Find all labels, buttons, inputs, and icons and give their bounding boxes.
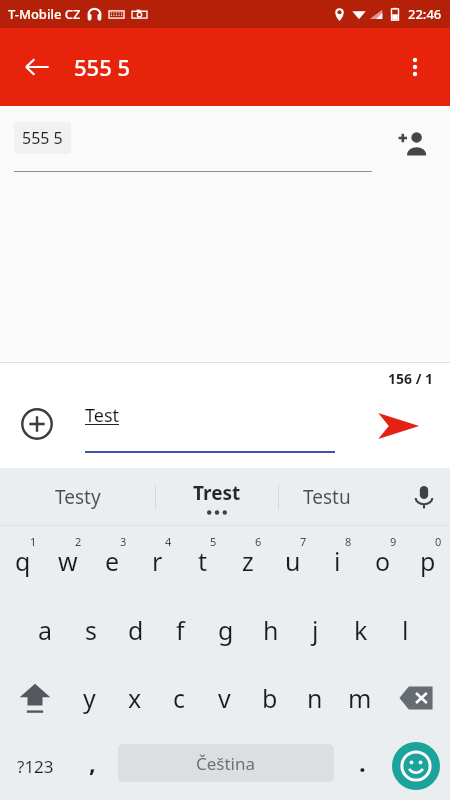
staticText: 3 [120,534,127,549]
button[interactable]: Comma [70,732,114,800]
staticText: o [375,544,391,578]
button[interactable]: t [180,526,225,596]
staticText: 1 [30,534,37,549]
button[interactable]: Add contact [390,121,436,167]
staticText: a [38,613,53,647]
staticText: 5 [210,534,217,549]
button[interactable]: g [203,596,248,664]
staticText: g [218,613,234,647]
button[interactable]: Čeština [118,744,334,782]
button[interactable]: 555 5 [14,122,71,154]
staticText: 156 / 1 [388,369,434,388]
staticText: v [218,681,231,715]
button[interactable]: b [247,664,292,732]
button[interactable]: Testu [279,468,398,526]
button[interactable]: y [67,664,112,732]
button[interactable]: d [113,596,158,664]
button[interactable]: f [158,596,203,664]
button[interactable]: r [135,526,180,596]
button[interactable]: a [23,596,68,664]
button[interactable]: h [248,596,293,664]
staticText: , [89,746,96,779]
staticText: 8 [345,534,352,549]
button[interactable]: m [337,664,382,732]
button[interactable]: Backspace [385,664,447,732]
button[interactable]: ?123 [4,732,66,800]
staticText: z [242,544,254,578]
staticText: 22:46 [408,5,442,23]
staticText: 9 [390,534,397,549]
staticText: h [263,613,279,647]
button[interactable]: More options [392,44,438,90]
staticText: q [15,544,31,578]
staticText: 555 5 [22,127,63,149]
staticText: d [128,613,144,647]
staticText: ?123 [17,755,54,778]
staticText: f [176,613,185,647]
staticText: . [359,746,366,779]
staticText: j [312,613,319,647]
button[interactable]: c [157,664,202,732]
button[interactable]: Voice input [398,468,450,526]
button[interactable]: Trest [156,468,278,526]
button[interactable]: k [338,596,383,664]
staticText: Testy [55,484,101,510]
staticText: b [262,681,278,715]
staticText: p [420,544,436,578]
staticText: w [58,544,78,578]
staticText: 6 [255,534,262,549]
button[interactable]: p [405,526,450,596]
staticText: l [402,613,409,647]
staticText: u [285,544,301,578]
button[interactable]: o [360,526,405,596]
staticText: t [198,544,208,578]
button[interactable]: w [45,526,90,596]
button[interactable]: e [90,526,135,596]
staticText: m [348,681,372,715]
staticText: c [173,681,186,715]
button[interactable]: s [68,596,113,664]
staticText: e [105,544,120,578]
staticText: n [307,681,323,715]
button[interactable]: Shift [3,664,67,732]
staticText: T-Mobile CZ [8,5,81,23]
staticText: k [354,613,368,647]
button[interactable]: Testy [0,468,155,526]
staticText: 0 [435,534,442,549]
staticText: Čeština [196,752,256,775]
staticText: 555 5 [74,52,131,82]
button[interactable]: q [0,526,45,596]
button[interactable]: j [293,596,338,664]
staticText: r [152,544,163,578]
staticText: 7 [300,534,307,549]
button[interactable]: z [225,526,270,596]
button[interactable]: x [112,664,157,732]
button[interactable]: u [270,526,315,596]
button[interactable]: Emoji [392,742,440,790]
staticText: Test [85,403,120,428]
staticText: 2 [75,534,82,549]
button[interactable]: Send [368,396,428,456]
staticText: i [334,544,341,578]
staticText: y [83,681,96,715]
button[interactable]: i [315,526,360,596]
staticText: Trest [193,480,241,506]
button[interactable]: v [202,664,247,732]
button[interactable]: l [383,596,428,664]
button[interactable]: Back [14,44,60,90]
staticText: x [128,681,142,715]
staticText: Testu [303,484,351,510]
button[interactable]: Period [340,732,384,800]
button[interactable]: n [292,664,337,732]
staticText: s [85,613,97,647]
button[interactable]: Attach [12,399,62,449]
staticText: 4 [165,534,172,549]
